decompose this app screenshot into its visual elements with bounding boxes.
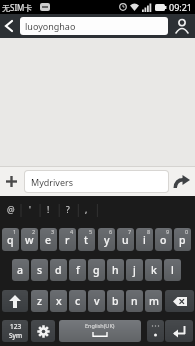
staticText: 123 [10,322,22,331]
button[interactable]: m [145,290,162,312]
staticText: luoyonghao [25,20,76,32]
staticText: @ [7,204,15,216]
button[interactable]: i [136,228,153,251]
staticText: 2 [32,228,36,235]
button[interactable] [165,320,193,342]
button[interactable]: p [174,228,191,251]
staticText: w [25,233,34,247]
button[interactable]: s [31,259,48,281]
button[interactable]: @ [2,196,19,224]
button[interactable]: g [88,259,105,281]
button[interactable]: x [50,290,67,312]
staticText: Mydrivers [31,176,74,188]
button[interactable]: f [69,259,86,281]
button[interactable] [0,14,18,38]
button[interactable]: k [145,259,162,281]
staticText: n [131,294,138,308]
button[interactable]: q [2,228,19,251]
staticText: l [171,263,174,277]
staticText: k [151,263,157,277]
button[interactable]: e [40,228,57,251]
button[interactable] [31,320,55,342]
staticText: q [7,233,14,247]
staticText: r [65,233,70,247]
button[interactable]: ! [40,196,57,224]
staticText: b [112,294,119,308]
button[interactable]: d [50,259,67,281]
staticText: English(UK) [85,322,115,329]
staticText: f [76,263,80,277]
button[interactable] [169,14,195,38]
button[interactable] [2,290,28,312]
button[interactable]: ? [59,196,76,224]
button[interactable]: r [59,228,76,251]
button[interactable]: Mydrivers [25,171,168,192]
staticText: ? [66,204,70,216]
staticText: Sym [9,331,22,340]
staticText: m [149,294,159,308]
staticText: , [85,204,88,216]
staticText: y [104,233,110,247]
staticText: 8 [147,228,151,235]
button[interactable]: o [155,228,172,251]
staticText: e [45,233,52,247]
button[interactable] [169,167,195,196]
staticText: 6 [109,228,113,235]
button[interactable]: luoyonghao [20,17,168,35]
button[interactable]: h [107,259,124,281]
button[interactable] [165,290,194,312]
button[interactable]: b [107,290,124,312]
staticText: ' [29,204,31,216]
staticText: c [75,294,81,308]
staticText: p [179,233,186,247]
staticText: 7 [128,228,132,235]
staticText: d [55,263,62,277]
button[interactable]: 123 [2,320,28,342]
staticText: j [133,263,136,277]
button[interactable]: a [12,259,29,281]
button[interactable]: v [88,290,105,312]
button[interactable] [147,320,164,342]
staticText: i [143,233,146,247]
staticText: g [93,263,100,277]
staticText: x [56,294,62,308]
button[interactable]: c [69,290,86,312]
staticText: t [84,233,89,247]
staticText: 9 [166,228,170,235]
button[interactable]: y [98,228,115,251]
button[interactable]: English(UK) [59,320,141,342]
button[interactable]: u [117,228,134,251]
staticText: v [94,294,100,308]
staticText: 3 [51,228,55,235]
staticText: 09:21 [169,1,193,13]
staticText: 无SIM卡 [2,2,33,13]
staticText: o [160,233,167,247]
button[interactable]: j [126,259,143,281]
staticText: ! [47,204,50,216]
staticText: u [122,233,129,247]
button[interactable]: ' [21,196,38,224]
staticText: 1 [13,228,17,235]
button[interactable]: w [21,228,38,251]
staticText: 5 [89,228,93,235]
staticText: a [17,263,24,277]
staticText: s [37,263,43,277]
staticText: z [37,294,43,308]
staticText: 4 [70,228,74,235]
button[interactable]: t [78,228,95,251]
button[interactable]: z [31,290,48,312]
button[interactable] [0,167,22,196]
button[interactable]: , [78,196,95,224]
button[interactable]: l [164,259,181,281]
button[interactable]: n [126,290,143,312]
staticText: 0 [185,228,189,235]
staticText: h [112,263,119,277]
